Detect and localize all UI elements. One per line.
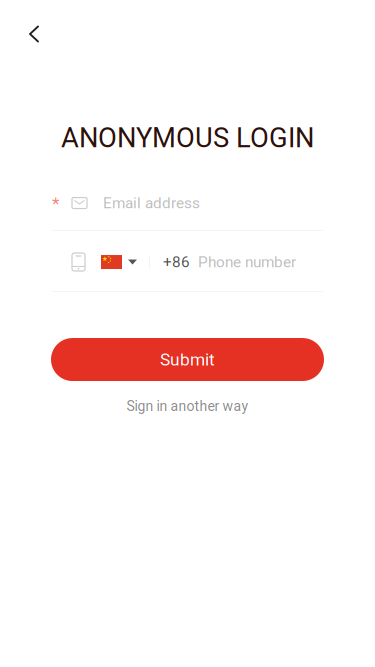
staticText: ANONYMOUS LOGIN [61,122,314,154]
staticText: Submit [160,349,215,370]
button[interactable]: Select country code [85,232,137,292]
staticText: +86 [163,253,190,271]
button[interactable]: Back [12,12,56,56]
staticText: Sign in another way [126,398,248,414]
staticText: Email address [103,194,200,212]
button[interactable]: Submit [0,338,375,381]
button[interactable]: Sign in another way [106,392,268,420]
staticText: * [52,193,59,214]
staticText: Phone number [198,253,296,271]
